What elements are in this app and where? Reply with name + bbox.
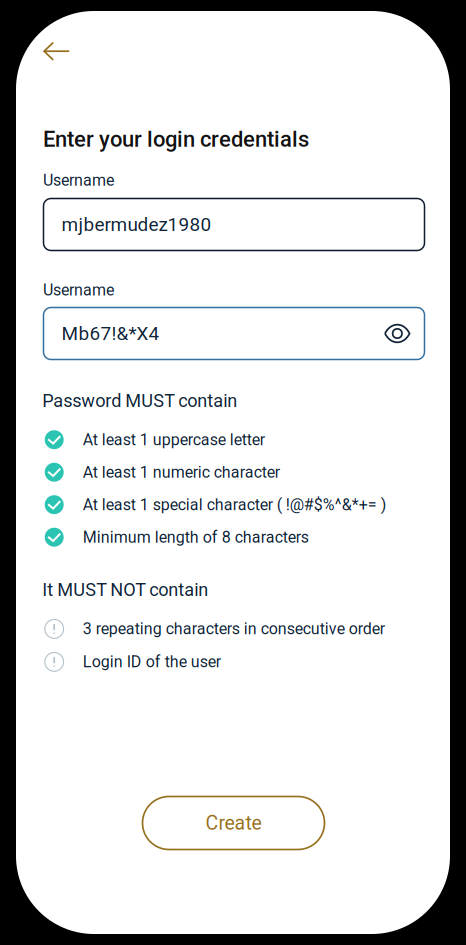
staticText: At least 1 uppercase letter (83, 430, 265, 449)
button[interactable]: Show password (384, 324, 410, 343)
button[interactable]: Create (142, 796, 324, 849)
staticText: 3 repeating characters in consecutive or… (83, 619, 385, 638)
staticText: Login ID of the user (83, 652, 221, 671)
staticText: mjbermudez1980 (61, 213, 211, 236)
staticText: Username (43, 171, 114, 190)
staticText: Username (43, 281, 114, 299)
staticText: Password MUST contain (42, 390, 237, 411)
staticText: Minimum length of 8 characters (83, 528, 309, 547)
staticText: Mb67!&*X4 (61, 322, 159, 345)
staticText: It MUST NOT contain (42, 579, 208, 600)
staticText: At least 1 numeric character (83, 463, 280, 482)
staticText: Enter your login credentials (43, 126, 309, 152)
button[interactable]: Back (27, 28, 86, 75)
staticText: Create (205, 812, 261, 834)
staticText: At least 1 special character ( !@#$%^&*+… (83, 495, 387, 514)
